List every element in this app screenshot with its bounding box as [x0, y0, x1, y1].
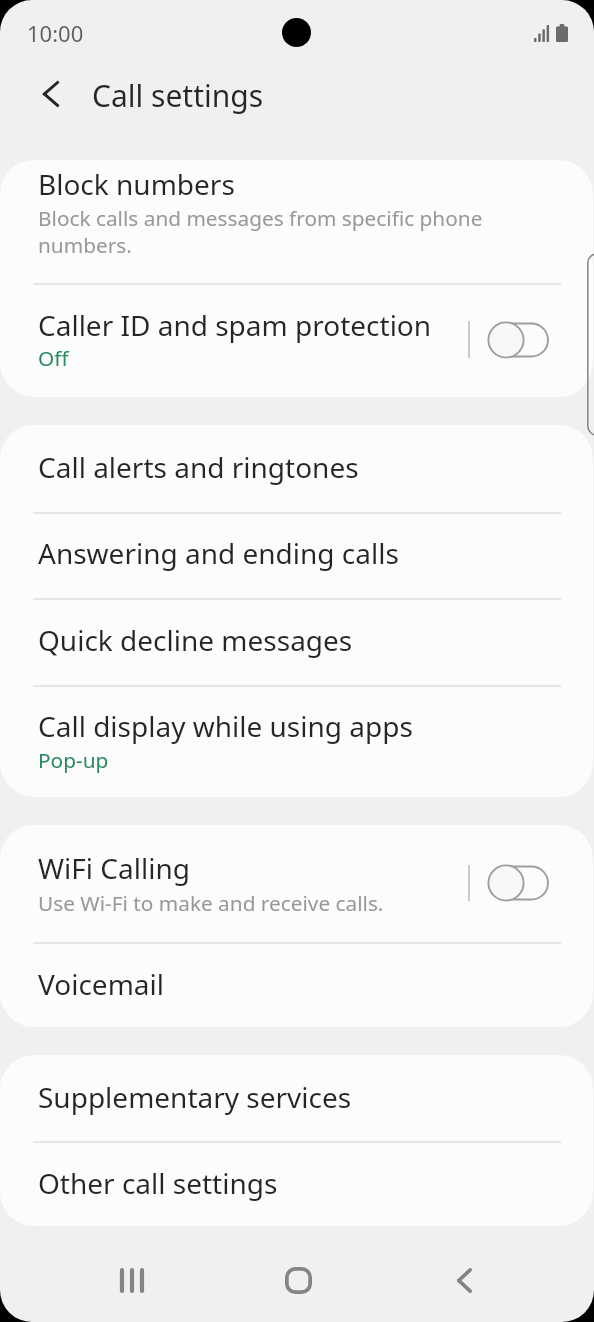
button[interactable]: Supplementary services — [0, 1055, 593, 1141]
button[interactable]: WiFi Calling, off — [478, 855, 562, 911]
staticText: Other call settings — [38, 1164, 278, 1202]
button[interactable]: Caller ID and spam protection, off — [478, 312, 562, 368]
button[interactable]: Caller ID and spam protection — [0, 283, 593, 397]
staticText: 10:00 — [27, 18, 84, 48]
staticText: Call settings — [92, 75, 264, 116]
button[interactable]: Navigate up — [27, 70, 75, 118]
staticText: Off — [38, 344, 338, 372]
staticText: Caller ID and spam protection — [38, 306, 432, 344]
button[interactable]: Answering and ending calls — [0, 512, 593, 598]
button[interactable]: Block numbers — [0, 160, 593, 283]
staticText: Call alerts and ringtones — [38, 448, 359, 486]
button[interactable]: Voicemail — [0, 942, 593, 1027]
button[interactable]: Home — [232, 1239, 364, 1322]
staticText: WiFi Calling — [38, 849, 190, 887]
button[interactable]: WiFi Calling — [0, 825, 593, 942]
staticText: Voicemail — [38, 965, 164, 1003]
staticText: Pop-up — [38, 746, 338, 774]
button[interactable]: Quick decline messages — [0, 598, 593, 685]
staticText: Supplementary services — [38, 1078, 352, 1116]
staticText: Call display while using apps — [38, 707, 413, 745]
staticText: Use Wi-Fi to make and receive calls. — [38, 889, 510, 917]
button[interactable]: Other call settings — [0, 1141, 593, 1226]
button[interactable]: Recent apps — [66, 1239, 198, 1322]
staticText: Block numbers — [38, 165, 235, 203]
staticText: Answering and ending calls — [38, 534, 399, 572]
button[interactable]: Back — [398, 1239, 530, 1322]
staticText: Quick decline messages — [38, 621, 353, 659]
button[interactable]: Call display while using apps — [0, 685, 593, 797]
button[interactable]: Call alerts and ringtones — [0, 425, 593, 512]
staticText: Block calls and messages from specific p… — [38, 204, 510, 259]
